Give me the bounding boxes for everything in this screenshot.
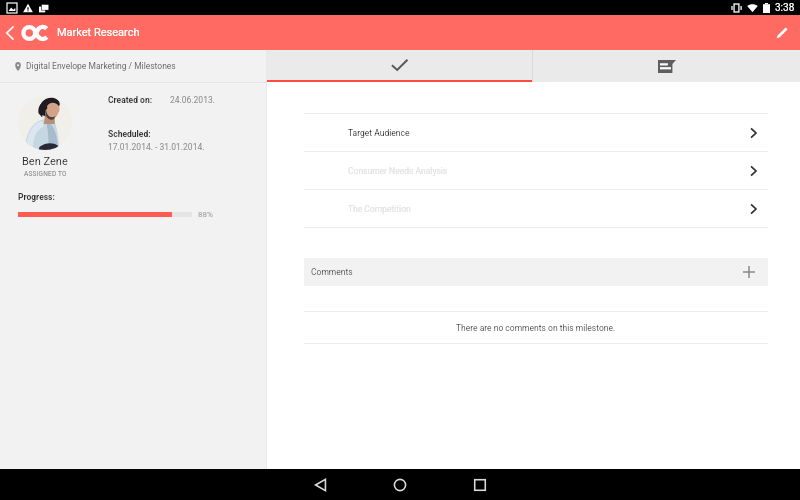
button[interactable]: Comments tab xyxy=(533,50,800,82)
staticText: Progress: xyxy=(18,192,55,202)
staticText: Target Audience xyxy=(348,128,410,138)
button[interactable]: Back xyxy=(301,469,339,500)
button[interactable]: Home xyxy=(381,469,419,500)
button[interactable]: The Competition xyxy=(304,190,768,227)
button[interactable]: Recent apps xyxy=(461,469,499,500)
staticText: Scheduled: xyxy=(108,129,151,139)
staticText: Consumer Needs Analysis xyxy=(348,166,448,176)
staticText: 17.01.2014. - 31.01.2014. xyxy=(108,142,205,152)
staticText: Market Research xyxy=(57,26,140,39)
staticText: 3:38 xyxy=(775,2,795,14)
staticText: ASSIGNED TO xyxy=(24,170,67,178)
button[interactable]: Back xyxy=(0,15,20,50)
staticText: Digital Envelope Marketing / Milestones xyxy=(26,61,176,71)
button[interactable]: Edit xyxy=(769,20,795,46)
button[interactable]: Consumer Needs Analysis xyxy=(304,152,768,189)
button[interactable]: Target Audience xyxy=(304,114,768,151)
staticText: Ben Zene xyxy=(22,155,68,168)
button[interactable]: Tasks tab xyxy=(267,50,532,82)
staticText: There are no comments on this milestone. xyxy=(456,323,616,333)
staticText: Comments xyxy=(311,267,353,277)
button[interactable]: Comments xyxy=(304,258,768,286)
staticText: 88% xyxy=(198,210,213,219)
staticText: Created on: xyxy=(108,95,153,105)
staticText: The Competition xyxy=(348,204,411,214)
staticText: 24.06.2013. xyxy=(170,95,215,105)
